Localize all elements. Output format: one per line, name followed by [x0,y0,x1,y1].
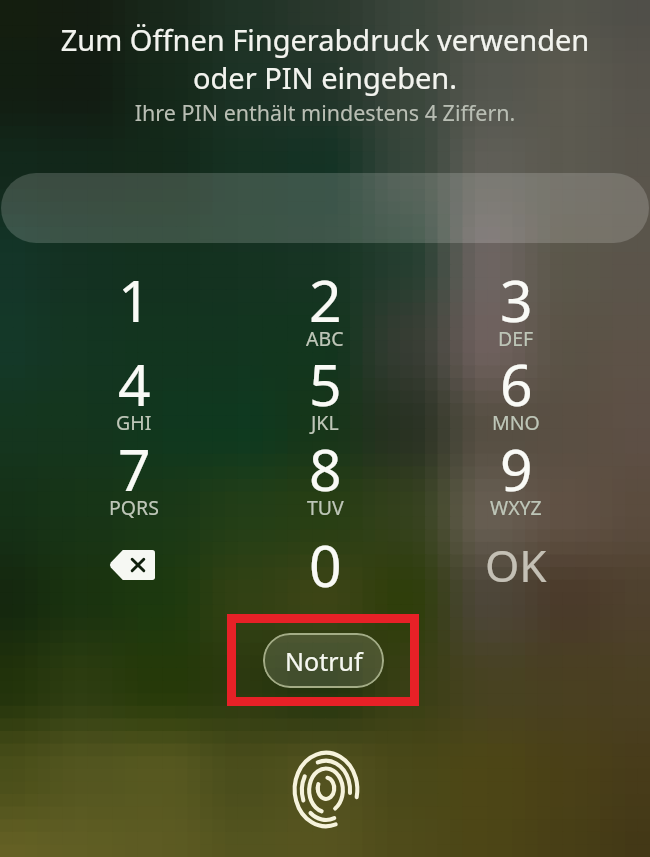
staticText: Zum Öffnen Fingerabdruck verwenden oder … [0,20,650,97]
button[interactable]: Fingerabdrucksensor [293,750,359,829]
staticText: 4 [118,345,151,423]
staticText: MNO [492,409,540,436]
staticText: PQRS [109,494,159,521]
button[interactable]: 8 [247,435,403,530]
button[interactable]: 9 [438,435,594,530]
staticText: 5 [309,345,342,423]
staticText: JKL [311,409,339,436]
button[interactable]: 1 [56,266,212,361]
staticText: 3 [500,261,533,339]
button[interactable]: 7 [56,435,212,530]
button[interactable]: Löschen [84,527,180,603]
staticText: Notruf [285,644,363,678]
staticText: 1 [118,261,151,339]
button[interactable]: 0 [247,531,403,626]
staticText: GHI [116,409,152,436]
staticText: 6 [500,345,533,423]
button[interactable]: 2 [247,266,403,361]
button[interactable]: 6 [438,350,594,445]
button[interactable]: 4 [56,350,212,445]
button[interactable]: 5 [247,350,403,445]
button[interactable]: OK [456,527,576,603]
staticText: ABC [306,325,344,352]
staticText: OK [485,535,547,595]
button[interactable] [1,173,649,243]
staticText: Ihre PIN enthält mindestens 4 Ziffern. [0,98,650,127]
button[interactable]: 3 [438,266,594,361]
staticText: 7 [118,430,151,508]
staticText: 2 [309,261,342,339]
staticText: 8 [309,430,342,508]
staticText: TUV [307,494,344,521]
staticText: 0 [309,526,342,604]
staticText: 9 [500,430,533,508]
staticText: WXYZ [490,494,542,521]
button[interactable]: Notruf [263,633,384,688]
staticText: DEF [498,325,534,352]
